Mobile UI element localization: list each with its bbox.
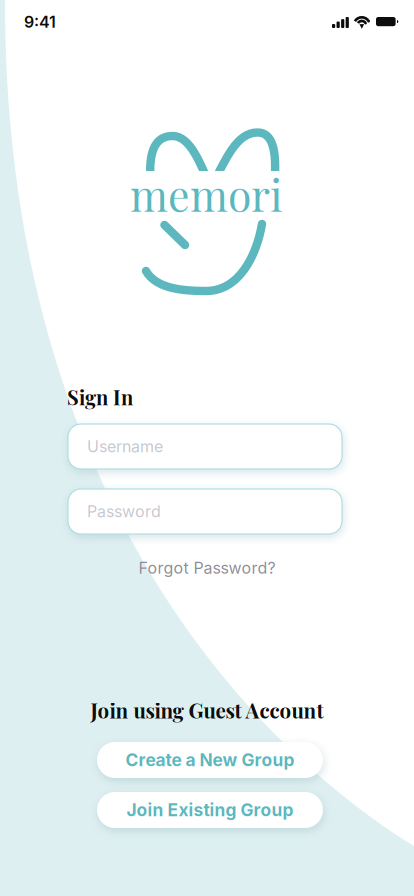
staticText: Sign In <box>67 384 133 410</box>
staticText: Forgot Password? <box>138 558 275 578</box>
staticText: memori <box>130 166 283 222</box>
button[interactable]: Join Existing Group <box>97 792 323 828</box>
staticText: Username <box>87 437 163 456</box>
staticText: Password <box>87 502 161 521</box>
staticText: Join Existing Group <box>126 799 293 820</box>
staticText: Create a New Group <box>125 749 294 770</box>
button[interactable]: Forgot Password? <box>117 556 297 580</box>
button[interactable]: Username <box>68 424 342 469</box>
staticText: Join using Guest Account <box>90 696 323 724</box>
staticText: 9:41 <box>24 12 56 32</box>
button[interactable]: Password <box>68 489 342 534</box>
button[interactable]: Create a New Group <box>97 742 323 778</box>
